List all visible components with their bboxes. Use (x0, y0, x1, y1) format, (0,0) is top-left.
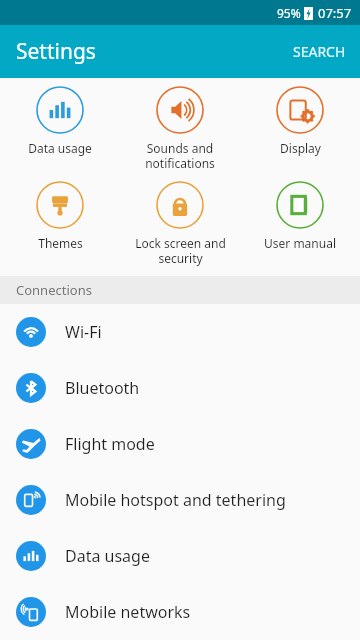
staticText: Themes (38, 235, 83, 251)
button[interactable]: Mobile networks (0, 584, 360, 640)
button[interactable]: Bluetooth (0, 360, 360, 416)
button[interactable]: SEARCH (279, 32, 360, 71)
button[interactable]: Wi-Fi (0, 304, 360, 360)
staticText: Bluetooth (65, 377, 140, 399)
button[interactable]: Mobile hotspot and tethering (0, 472, 360, 528)
staticText: Data usage (65, 545, 150, 567)
button[interactable]: Data usage (0, 82, 120, 160)
staticText: 07:57 (318, 4, 352, 22)
staticText: Display (280, 140, 321, 156)
staticText: SEARCH (293, 42, 346, 61)
button[interactable]: Display (240, 82, 360, 160)
button[interactable]: Sounds and notifications (120, 82, 240, 175)
staticText: User manual (264, 235, 336, 251)
staticText: Sounds and notifications (145, 140, 215, 171)
button[interactable]: Flight mode (0, 416, 360, 472)
button[interactable]: Settings (0, 31, 102, 72)
staticText: Mobile hotspot and tethering (65, 489, 286, 511)
staticText: Flight mode (65, 433, 155, 455)
button[interactable]: User manual (240, 177, 360, 255)
staticText: Settings (16, 37, 96, 66)
staticText: Wi-Fi (65, 321, 102, 343)
staticText: 95% (277, 5, 301, 21)
staticText: Mobile networks (65, 601, 191, 623)
button[interactable]: Lock screen and security (120, 177, 240, 270)
staticText: Connections (16, 281, 92, 299)
staticText: Data usage (28, 140, 92, 156)
button[interactable]: Data usage (0, 528, 360, 584)
button[interactable]: Themes (0, 177, 120, 255)
staticText: Lock screen and security (135, 235, 226, 266)
